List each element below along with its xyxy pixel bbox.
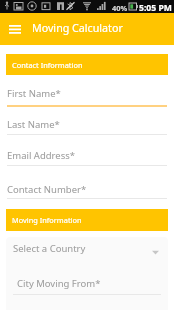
staticText: 5:05 PM [139,2,172,14]
staticText: Contact Number* [7,183,87,196]
button[interactable]: Last Name* [7,114,167,134]
button[interactable]: City Moving From* [17,273,158,293]
staticText: Last Name* [7,118,60,131]
button[interactable]: Email Address* [7,145,167,165]
button[interactable]: Contact Number* [7,179,167,199]
staticText: Email Address* [7,149,76,162]
button[interactable]: Open navigation menu [3,12,27,44]
staticText: 40% [112,3,128,13]
button[interactable]: First Name* [7,83,167,103]
staticText: City Moving From* [17,277,101,290]
staticText: Contact Information [12,60,83,70]
staticText: First Name* [7,87,61,100]
staticText: Select a Country [13,242,86,255]
staticText: Moving Calculator [32,21,123,36]
button[interactable]: Moving Information [6,209,168,231]
button[interactable]: Select a Country [7,237,165,259]
staticText: Moving Information [12,215,82,225]
button[interactable]: Contact Information [6,54,168,75]
